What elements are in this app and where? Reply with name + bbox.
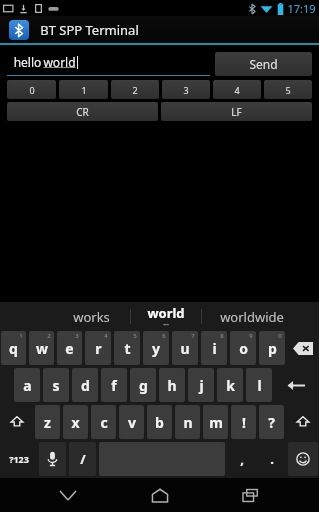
- staticText: worldwide: [220, 308, 284, 326]
- staticText: 5: [133, 332, 137, 340]
- staticText: 8: [220, 332, 224, 340]
- staticText: 5: [285, 84, 291, 96]
- button[interactable]: l: [246, 368, 272, 402]
- button[interactable]: q: [1, 331, 26, 365]
- button[interactable]: x: [63, 405, 88, 439]
- button[interactable]: y: [143, 331, 169, 365]
- staticText: BT SPP Terminal: [40, 21, 139, 39]
- staticText: s: [52, 376, 60, 395]
- staticText: 17:19: [287, 1, 316, 16]
- button[interactable]: 0: [7, 80, 56, 99]
- button[interactable]: s: [43, 368, 69, 402]
- button[interactable]: Delete: [288, 331, 318, 365]
- staticText: 2: [47, 332, 51, 340]
- button[interactable]: Recent apps: [227, 478, 275, 512]
- staticText: ?: [268, 413, 275, 432]
- staticText: i: [212, 339, 217, 358]
- button[interactable]: a: [14, 368, 40, 402]
- button[interactable]: Hide keyboard: [44, 478, 92, 512]
- button[interactable]: p: [259, 331, 285, 365]
- button[interactable]: g: [130, 368, 156, 402]
- staticText: p: [268, 339, 277, 358]
- button[interactable]: CR: [7, 102, 158, 121]
- staticText: n: [183, 413, 193, 432]
- button[interactable]: worldwide: [202, 302, 302, 331]
- button[interactable]: w: [29, 331, 54, 365]
- button[interactable]: world: [131, 302, 201, 331]
- staticText: CR: [76, 105, 89, 119]
- staticText: h: [167, 376, 177, 395]
- button[interactable]: .: [258, 442, 285, 476]
- button[interactable]: v: [119, 405, 144, 439]
- staticText: v: [128, 413, 136, 432]
- button[interactable]: Shift: [1, 405, 32, 439]
- button[interactable]: !: [231, 405, 256, 439]
- staticText: •••: [163, 322, 169, 329]
- staticText: 6: [162, 332, 166, 340]
- button[interactable]: m: [203, 405, 228, 439]
- button[interactable]: works: [52, 302, 130, 331]
- staticText: w: [36, 339, 48, 358]
- button[interactable]: ,: [228, 442, 255, 476]
- staticText: c: [100, 413, 108, 432]
- staticText: 3: [75, 332, 79, 340]
- staticText: k: [226, 376, 235, 395]
- staticText: 7: [191, 332, 195, 340]
- button[interactable]: z: [35, 405, 60, 439]
- staticText: 9: [249, 332, 253, 340]
- button[interactable]: ?123: [1, 442, 36, 476]
- button[interactable]: f: [101, 368, 127, 402]
- button[interactable]: Enter: [275, 368, 318, 402]
- staticText: /: [80, 450, 86, 468]
- staticText: 2: [132, 84, 138, 96]
- staticText: f: [111, 376, 117, 395]
- staticText: 1: [81, 84, 87, 96]
- button[interactable]: j: [188, 368, 214, 402]
- staticText: hello: [12, 54, 43, 70]
- staticText: r: [95, 339, 102, 358]
- button[interactable]: /: [69, 442, 96, 476]
- button[interactable]: n: [175, 405, 200, 439]
- staticText: u: [180, 339, 190, 358]
- staticText: z: [44, 413, 51, 432]
- button[interactable]: r: [85, 331, 111, 365]
- button[interactable]: 3: [162, 80, 210, 99]
- button[interactable]: Send: [215, 52, 312, 76]
- button[interactable]: hello: [7, 51, 210, 76]
- button[interactable]: h: [159, 368, 185, 402]
- button[interactable]: t: [114, 331, 140, 365]
- button[interactable]: d: [72, 368, 98, 402]
- button[interactable]: 4: [213, 80, 261, 99]
- button[interactable]: 2: [111, 80, 159, 99]
- button[interactable]: o: [230, 331, 256, 365]
- staticText: 0: [29, 84, 35, 96]
- button[interactable]: e: [57, 331, 82, 365]
- button[interactable]: ?: [259, 405, 284, 439]
- staticText: !: [242, 413, 246, 432]
- staticText: t: [124, 339, 131, 358]
- staticText: j: [199, 376, 204, 395]
- button[interactable]: k: [217, 368, 243, 402]
- staticText: x: [71, 413, 80, 432]
- staticText: o: [239, 339, 248, 358]
- staticText: e: [65, 339, 74, 358]
- button[interactable]: u: [172, 331, 198, 365]
- staticText: works: [73, 308, 110, 326]
- button[interactable]: i: [201, 331, 227, 365]
- button[interactable]: Emoji: [288, 442, 318, 476]
- button[interactable]: Shift: [287, 405, 318, 439]
- button[interactable]: Voice input: [39, 442, 66, 476]
- staticText: Send: [249, 56, 278, 72]
- staticText: b: [155, 413, 164, 432]
- button[interactable]: LF: [161, 102, 312, 121]
- staticText: 4: [234, 84, 240, 96]
- staticText: q: [9, 339, 18, 358]
- button[interactable]: c: [91, 405, 116, 439]
- staticText: m: [209, 413, 223, 432]
- button[interactable]: b: [147, 405, 172, 439]
- staticText: ,: [240, 450, 244, 468]
- button[interactable]: Home: [136, 478, 184, 512]
- button[interactable]: 5: [264, 80, 312, 99]
- button[interactable]: 1: [59, 80, 108, 99]
